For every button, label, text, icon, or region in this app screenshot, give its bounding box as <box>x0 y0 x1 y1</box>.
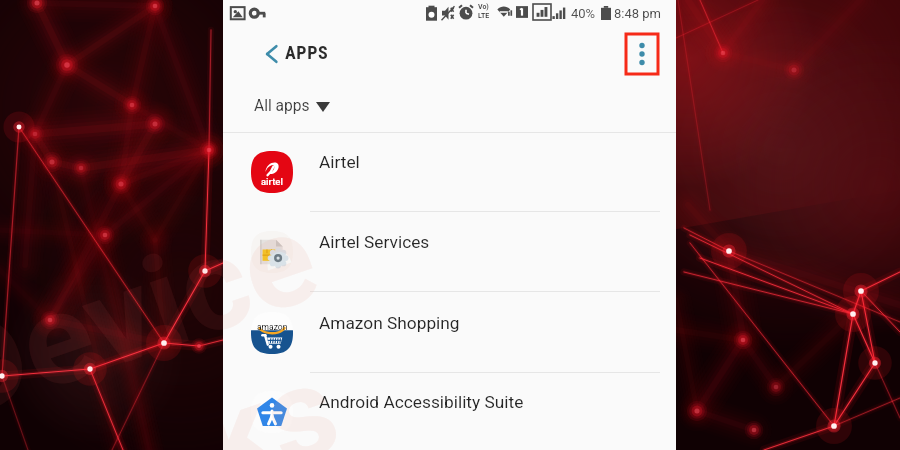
staticText: All apps <box>254 97 310 115</box>
staticText: 8:48 pm <box>614 6 661 21</box>
staticText: Airtel Services <box>319 232 430 252</box>
staticText: Amazon Shopping <box>319 313 460 333</box>
staticText: LTE <box>478 12 490 20</box>
staticText: DeviceTricks <box>0 65 672 449</box>
button[interactable]: Android Accessibility Suite <box>223 372 676 450</box>
button[interactable]: More options <box>626 34 658 74</box>
staticText: Android Accessibility Suite <box>319 392 524 412</box>
staticText: amazon <box>257 322 288 332</box>
staticText: airtel <box>261 176 283 187</box>
staticText: Airtel <box>319 152 360 172</box>
staticText: 40% <box>571 6 596 21</box>
button[interactable]: Back <box>259 40 287 68</box>
button[interactable]: Airtel Services <box>223 212 676 292</box>
button[interactable]: All apps <box>223 80 676 131</box>
staticText: DeviceTricks <box>223 159 447 450</box>
button[interactable]: amazon <box>223 293 676 373</box>
button[interactable]: airtel <box>223 132 676 212</box>
staticText: Vo) <box>478 3 489 11</box>
staticText: APPS <box>285 42 329 63</box>
